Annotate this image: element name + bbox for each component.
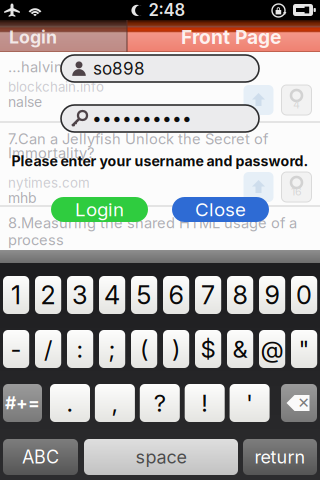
button[interactable]: Login	[0, 20, 320, 52]
staticText: $	[201, 334, 216, 363]
staticText: 5	[137, 280, 152, 310]
button[interactable]: @	[259, 330, 285, 368]
staticText: 7.Can a Jellyfish Unlock the Secret of	[8, 130, 268, 148]
staticText: 4	[293, 98, 300, 111]
staticText: Login	[75, 198, 124, 221]
staticText: 0	[296, 280, 312, 310]
staticText: …halving	[8, 58, 72, 76]
staticText: .	[66, 388, 73, 417]
staticText: Immortality?	[8, 144, 94, 162]
button[interactable]: ?	[140, 384, 180, 422]
staticText: Front Page	[181, 25, 281, 49]
staticText: @	[261, 334, 284, 363]
staticText: 9	[265, 280, 280, 310]
button[interactable]: 3	[67, 276, 93, 314]
button[interactable]: 6	[163, 276, 189, 314]
staticText: 1	[11, 280, 21, 310]
button[interactable]: 8	[227, 276, 253, 314]
button[interactable]: /	[35, 330, 61, 368]
button[interactable]: 4	[99, 276, 125, 314]
staticText: 8	[233, 280, 248, 310]
button[interactable]: .	[50, 384, 90, 422]
staticText: &	[233, 334, 248, 363]
button[interactable]: #+=	[3, 384, 42, 422]
staticText: 8.Measuring the shared HTML usage of a	[8, 214, 297, 232]
staticText: nalse	[8, 93, 42, 110]
staticText: (	[140, 334, 148, 363]
button[interactable]: "	[291, 330, 317, 368]
staticText: /	[44, 334, 52, 363]
staticText: ✕	[297, 394, 309, 412]
staticText: "	[299, 334, 310, 363]
button[interactable]: :	[67, 330, 93, 368]
staticText: 3	[72, 280, 88, 310]
button[interactable]: 0	[291, 276, 317, 314]
staticText: )	[172, 334, 180, 363]
button[interactable]: 1	[3, 276, 29, 314]
staticText: process	[8, 231, 64, 249]
button[interactable]: space	[84, 439, 238, 475]
button[interactable]: ABC	[3, 439, 78, 475]
staticText: ABC	[22, 446, 59, 468]
button[interactable]: 7	[195, 276, 221, 314]
button[interactable]: Login	[51, 197, 148, 222]
staticText: ;	[109, 334, 116, 363]
staticText: ••••••••••	[92, 108, 192, 129]
staticText: return	[254, 446, 305, 468]
button[interactable]: ;	[99, 330, 125, 368]
button[interactable]: 9	[259, 276, 285, 314]
button[interactable]: ,	[95, 384, 135, 422]
button[interactable]: Upvote	[243, 172, 273, 202]
staticText: :	[77, 334, 84, 363]
button[interactable]: 5	[131, 276, 157, 314]
staticText: Close	[195, 198, 246, 221]
staticText: 16	[291, 185, 302, 198]
staticText: 6	[169, 280, 184, 310]
button[interactable]: &	[227, 330, 253, 368]
staticText: '	[246, 388, 253, 417]
button[interactable]: (	[131, 330, 157, 368]
button[interactable]: Upvote	[243, 85, 273, 115]
button[interactable]: Comments	[281, 172, 311, 202]
staticText: 2	[41, 280, 56, 310]
button[interactable]: -	[3, 330, 29, 368]
button[interactable]: return	[243, 439, 317, 475]
staticText: mhb	[8, 189, 37, 206]
staticText: ,	[111, 388, 118, 417]
staticText: blockchain.info	[8, 79, 104, 95]
button[interactable]: !	[185, 384, 225, 422]
staticText: 4	[104, 280, 120, 310]
staticText: -	[11, 334, 22, 363]
staticText: 2:48	[148, 0, 185, 20]
staticText: #+=	[5, 392, 40, 413]
staticText: ?	[154, 388, 166, 417]
staticText: space	[135, 446, 186, 468]
button[interactable]: $	[195, 330, 221, 368]
staticText: nytimes.com	[8, 175, 90, 191]
staticText: so898	[93, 58, 145, 79]
staticText: !	[201, 388, 208, 417]
staticText: 7	[201, 280, 215, 310]
button[interactable]: Delete	[280, 384, 317, 422]
staticText: Login	[9, 26, 57, 48]
button[interactable]: Close	[172, 197, 269, 222]
staticText: Please enter your username and password.	[11, 152, 308, 169]
button[interactable]: '	[230, 384, 270, 422]
button[interactable]: 2	[35, 276, 61, 314]
button[interactable]: Comments	[281, 85, 311, 115]
button[interactable]: )	[163, 330, 189, 368]
